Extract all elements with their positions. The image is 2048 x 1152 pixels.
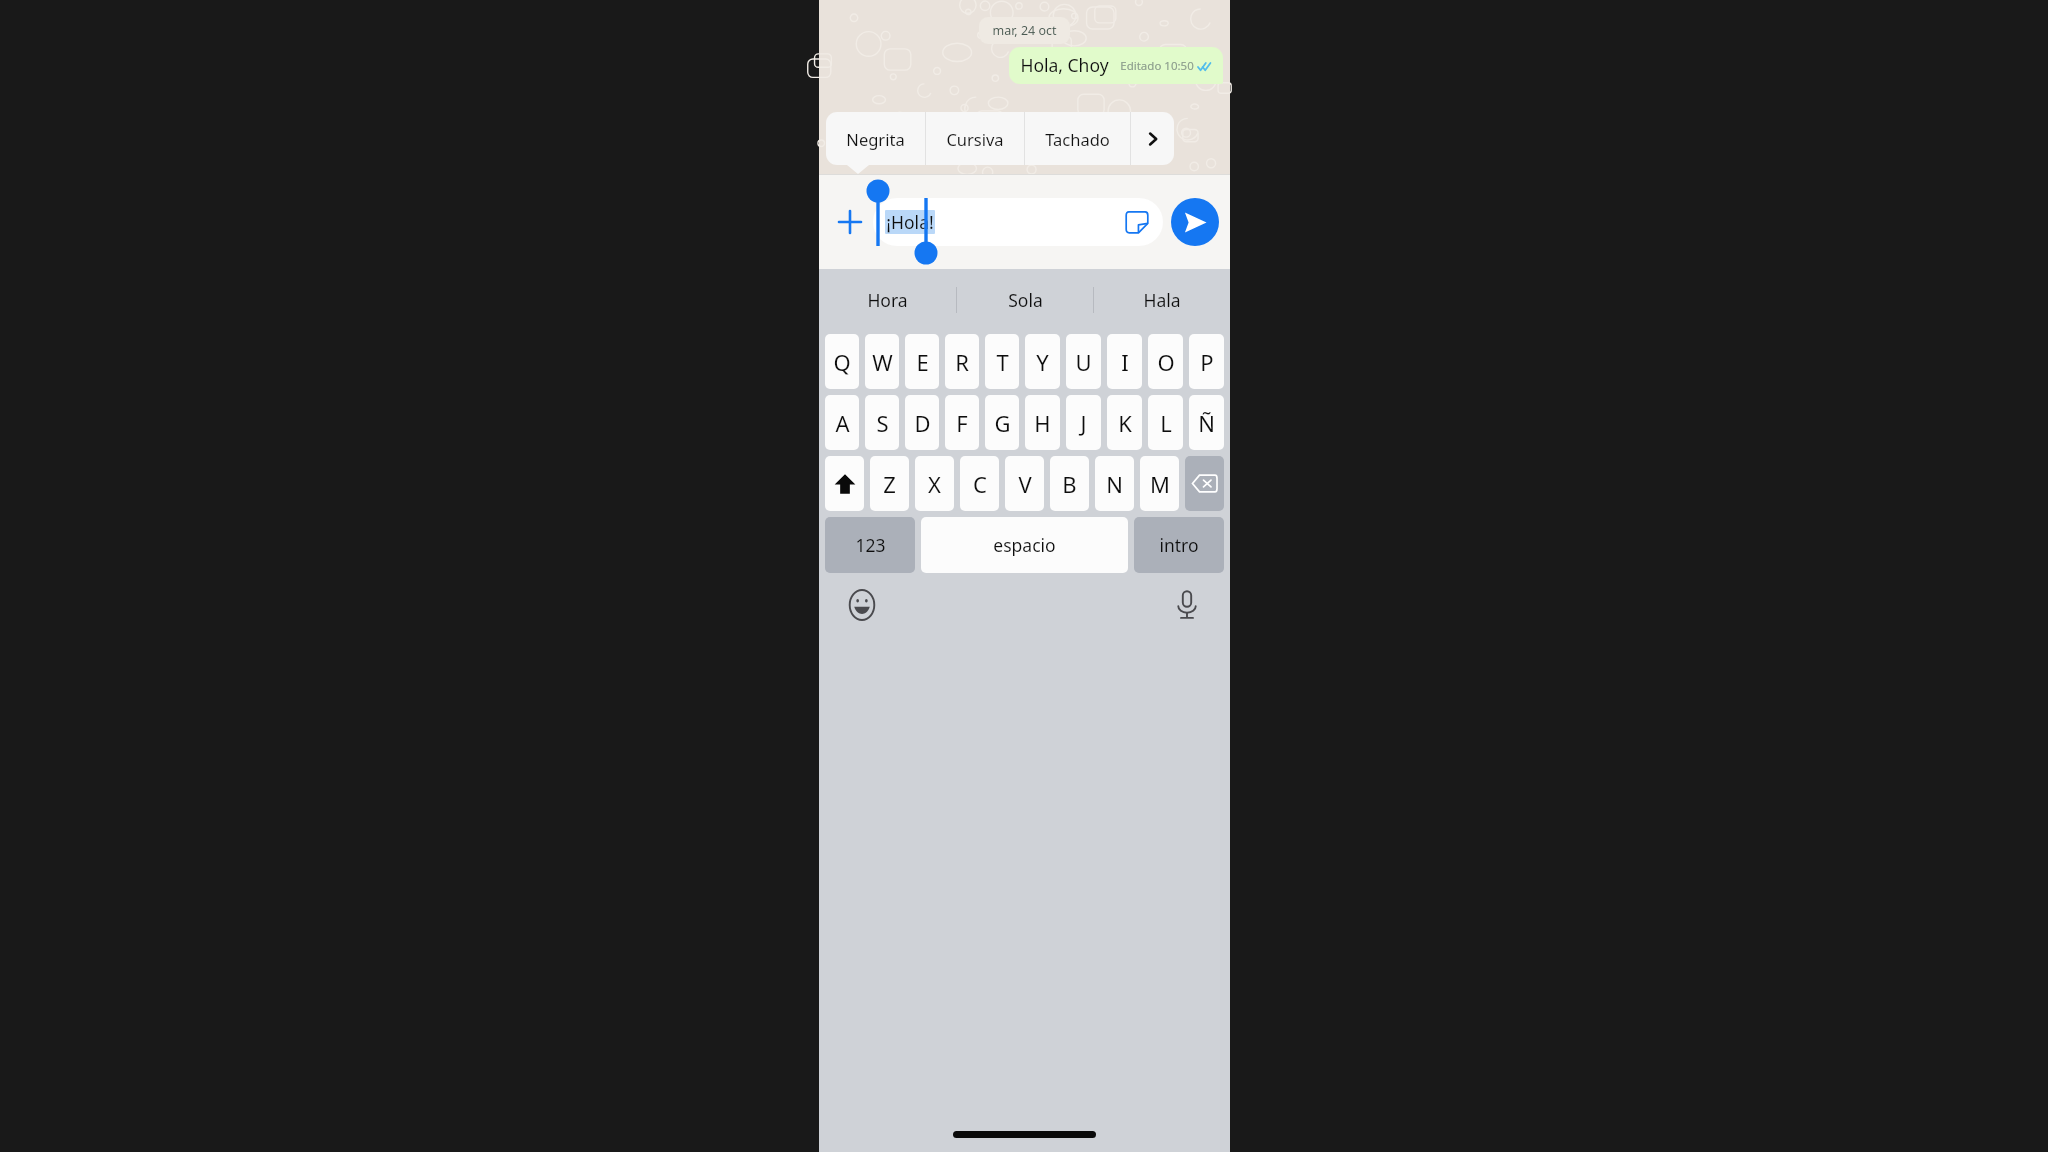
button[interactable]: X <box>915 456 954 511</box>
staticText: Tachado <box>1045 128 1110 150</box>
button[interactable]: I <box>1107 334 1142 389</box>
staticText: Hora <box>867 288 908 312</box>
button[interactable]: T <box>985 334 1019 389</box>
button[interactable]: Hola, Choy <box>1009 47 1223 84</box>
button[interactable]: Mayúsculas <box>825 456 864 511</box>
button[interactable]: Emoji <box>841 584 883 626</box>
staticText: M <box>1150 469 1170 499</box>
staticText: F <box>956 408 968 438</box>
staticText: O <box>1157 347 1175 377</box>
button[interactable]: V <box>1005 456 1044 511</box>
button[interactable]: Ñ <box>1189 395 1224 450</box>
staticText: P <box>1200 347 1214 377</box>
staticText: X <box>928 469 941 499</box>
staticText: C <box>973 469 987 499</box>
button[interactable]: J <box>1066 395 1101 450</box>
staticText: 123 <box>855 533 886 557</box>
button[interactable]: Y <box>1025 334 1060 389</box>
button[interactable]: ¡Hola! <box>873 198 1163 246</box>
button[interactable]: S <box>865 395 899 450</box>
button[interactable]: Más opciones <box>1131 112 1174 165</box>
button[interactable]: B <box>1050 456 1089 511</box>
staticText: W <box>872 347 893 377</box>
button[interactable]: Tachado <box>1025 112 1130 165</box>
staticText: mar, 24 oct <box>992 22 1057 39</box>
staticText: D <box>914 408 931 438</box>
button[interactable]: mar, 24 oct <box>979 17 1070 44</box>
staticText: Z <box>883 469 896 499</box>
button[interactable]: F <box>945 395 979 450</box>
button[interactable]: K <box>1107 395 1142 450</box>
button[interactable]: H <box>1025 395 1060 450</box>
staticText: R <box>955 347 969 377</box>
staticText: Editado 10:50 <box>1120 58 1194 74</box>
button[interactable]: D <box>905 395 939 450</box>
button[interactable]: intro <box>1134 517 1224 573</box>
staticText: T <box>996 347 1009 377</box>
staticText: N <box>1106 469 1123 499</box>
staticText: intro <box>1159 533 1199 557</box>
button[interactable]: E <box>905 334 939 389</box>
staticText: V <box>1018 469 1032 499</box>
staticText: S <box>876 408 889 438</box>
button[interactable]: P <box>1189 334 1224 389</box>
staticText: Hala <box>1143 288 1181 312</box>
staticText: ¡Hola! <box>886 210 934 234</box>
staticText: Sola <box>1008 288 1043 312</box>
button[interactable]: U <box>1066 334 1101 389</box>
button[interactable]: L <box>1148 395 1183 450</box>
button[interactable]: O <box>1148 334 1183 389</box>
staticText: H <box>1034 408 1051 438</box>
staticText: Negrita <box>846 128 905 150</box>
button[interactable]: C <box>960 456 999 511</box>
staticText: B <box>1062 469 1077 499</box>
staticText: K <box>1118 408 1132 438</box>
staticText: Y <box>1036 347 1049 377</box>
staticText: Q <box>833 347 851 377</box>
button[interactable]: A <box>825 395 859 450</box>
button[interactable]: Z <box>870 456 909 511</box>
button[interactable]: Adjuntar <box>830 202 870 242</box>
button[interactable]: Q <box>825 334 859 389</box>
staticText: Cursiva <box>946 128 1004 150</box>
staticText: I <box>1121 347 1129 377</box>
button[interactable]: Cursiva <box>926 112 1024 165</box>
button[interactable]: Enviar <box>1171 198 1219 246</box>
button[interactable]: W <box>865 334 899 389</box>
staticText: E <box>916 347 929 377</box>
button[interactable]: R <box>945 334 979 389</box>
button[interactable]: Negrita <box>826 112 925 165</box>
button[interactable]: espacio <box>921 517 1128 573</box>
button[interactable]: Sola <box>957 269 1093 331</box>
staticText: Ñ <box>1198 408 1215 438</box>
button[interactable]: Hala <box>1094 269 1230 331</box>
staticText: Hola, Choy <box>1020 53 1109 77</box>
button[interactable]: Borrar <box>1185 456 1224 511</box>
button[interactable]: Hora <box>819 269 956 331</box>
button[interactable]: N <box>1095 456 1134 511</box>
button[interactable]: 123 <box>825 517 915 573</box>
button[interactable]: M <box>1140 456 1179 511</box>
staticText: G <box>994 408 1011 438</box>
staticText: L <box>1160 408 1172 438</box>
staticText: A <box>835 408 850 438</box>
staticText: espacio <box>993 533 1056 557</box>
button[interactable]: Dictado <box>1166 584 1208 626</box>
button[interactable]: G <box>985 395 1019 450</box>
staticText: J <box>1080 408 1087 438</box>
button[interactable]: Stickers <box>1123 208 1151 236</box>
staticText: U <box>1075 347 1092 377</box>
